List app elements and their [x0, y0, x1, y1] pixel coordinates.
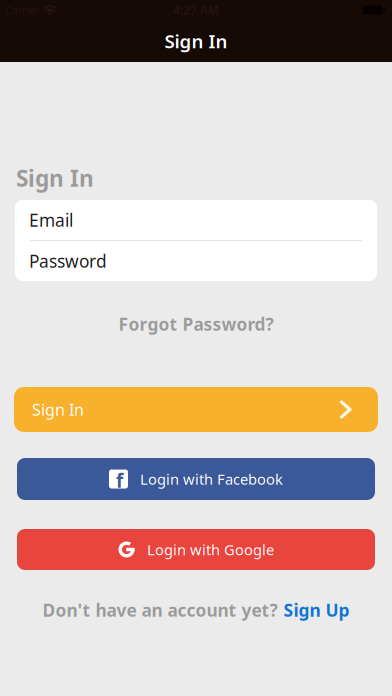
button[interactable]: Password [15, 241, 377, 281]
staticText: Sign Up [283, 598, 349, 621]
staticText: Email [29, 208, 73, 231]
staticText: Don't have an account yet? [42, 598, 277, 621]
staticText: Password [29, 249, 107, 272]
staticText: Login with Facebook [140, 469, 283, 489]
button[interactable]: Forgot Password? [118, 309, 273, 339]
staticText: Sign In [16, 163, 94, 193]
button[interactable]: Sign In [14, 387, 378, 432]
staticText: Sign In [164, 29, 227, 53]
staticText: Carrier [5, 3, 39, 17]
button[interactable]: f [17, 458, 375, 500]
button[interactable]: Don't have an account yet? [42, 600, 349, 620]
staticText: Login with Google [147, 540, 274, 559]
button[interactable]: Email [15, 200, 377, 240]
staticText: 4:27 AM [173, 2, 219, 18]
staticText: f [116, 468, 123, 493]
staticText: Forgot Password? [118, 312, 273, 335]
staticText: Sign In [32, 399, 84, 420]
button[interactable]: Login with Google [17, 529, 375, 570]
